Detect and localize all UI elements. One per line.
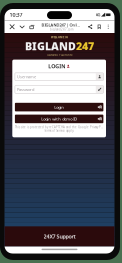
button[interactable]: Collapse bbox=[17, 21, 27, 33]
staticText: 10:37 bbox=[9, 11, 22, 18]
staticText: WELCOME TO bbox=[51, 35, 68, 39]
staticText: GAMING PLATFORM bbox=[47, 53, 72, 57]
button[interactable]: Login bbox=[15, 103, 103, 111]
staticText: Terms of Service apply. bbox=[44, 129, 74, 132]
button[interactable]: Bookmark bbox=[95, 21, 104, 33]
staticText: 4G bbox=[95, 12, 100, 17]
staticText: BIGLAND bbox=[25, 39, 76, 53]
staticText: bigland247.com bbox=[50, 28, 73, 31]
staticText: Password bbox=[17, 87, 34, 92]
staticText: This site is protected by reCAPTCHA and … bbox=[15, 125, 103, 129]
button[interactable]: Login with demo ID bbox=[15, 115, 103, 123]
staticText: 247 bbox=[76, 39, 94, 53]
button[interactable]: More options bbox=[104, 21, 113, 33]
button[interactable]: 24X7 Support bbox=[4, 226, 114, 246]
staticText: Login bbox=[54, 104, 64, 110]
staticText: Username bbox=[17, 74, 36, 79]
button[interactable]: Tabs bbox=[27, 21, 37, 33]
button[interactable]: Close bbox=[7, 21, 17, 33]
staticText: 24X7 Support bbox=[43, 233, 75, 240]
staticText: Login with demo ID bbox=[41, 116, 77, 121]
staticText: LOGIN bbox=[48, 63, 65, 70]
button[interactable]: Share bbox=[86, 21, 95, 33]
staticText: BIGLAND247 | Online Sports Exchange bbox=[41, 22, 81, 28]
